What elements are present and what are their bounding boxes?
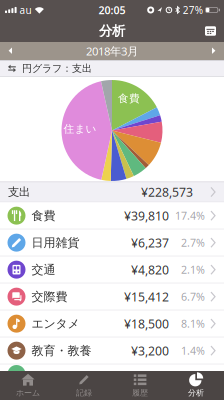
button[interactable]: 記録 [56, 371, 112, 400]
staticText: au [20, 3, 32, 17]
staticText: 2018年3月 [86, 43, 138, 59]
staticText: 1.4% [181, 343, 205, 358]
button[interactable]: 前の月 [0, 46, 15, 55]
staticText: 2.1% [181, 262, 205, 277]
button[interactable]: 円グラフ：支出 [0, 60, 224, 77]
button[interactable]: 交際費 [0, 283, 224, 310]
staticText: 27% [183, 3, 203, 17]
staticText: ¥228,573 [141, 184, 193, 200]
staticText: 2.7% [181, 235, 205, 250]
staticText: 日用雑貨 [31, 235, 79, 250]
staticText: ¥6,237 [131, 234, 169, 251]
staticText: 分析 [99, 23, 125, 39]
button[interactable]: エンタメ [0, 310, 224, 337]
staticText: 食費 [31, 208, 55, 223]
button[interactable]: 食費 [0, 202, 224, 229]
staticText: 交際費 [31, 289, 67, 304]
staticText: 記録 [76, 388, 92, 398]
staticText: 20:05 [98, 3, 125, 17]
button[interactable]: カレンダー [205, 26, 216, 36]
button[interactable]: 履歴 [112, 371, 168, 400]
button[interactable]: 交通 [0, 256, 224, 283]
staticText: ホーム [16, 388, 40, 398]
staticText: ¥4,820 [131, 261, 169, 278]
staticText: 住まい [63, 122, 96, 136]
staticText: エンタメ [31, 316, 79, 331]
button[interactable]: 教育・教養 [0, 337, 224, 364]
button[interactable]: 支出 [0, 181, 224, 202]
staticText: 円グラフ：支出 [22, 62, 92, 75]
staticText: 8.1% [181, 316, 205, 331]
staticText: 教育・教養 [31, 343, 91, 358]
staticText: 分析 [188, 388, 204, 398]
staticText: ¥18,500 [124, 315, 169, 332]
button[interactable]: ホーム [0, 371, 56, 400]
staticText: 支出 [8, 185, 30, 199]
staticText: 履歴 [132, 388, 148, 398]
staticText: 17.4% [175, 208, 205, 223]
staticText: ¥39,810 [124, 207, 169, 224]
staticText: ¥3,200 [131, 342, 169, 359]
button[interactable]: 日用雑貨 [0, 229, 224, 256]
button[interactable]: 次の月 [209, 46, 224, 55]
staticText: 6.7% [181, 289, 205, 304]
button[interactable]: 分析 [168, 371, 224, 400]
staticText: 食費 [118, 92, 140, 105]
staticText: 交通 [31, 262, 55, 277]
staticText: ¥15,412 [124, 288, 169, 305]
